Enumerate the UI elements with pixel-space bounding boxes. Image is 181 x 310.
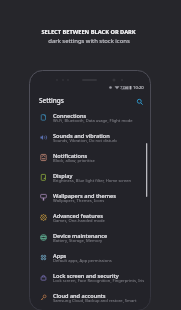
staticText: Device maintenance bbox=[53, 232, 108, 240]
staticText: dark settings with stock icons bbox=[48, 37, 130, 45]
staticText: Notifications bbox=[53, 152, 88, 160]
button[interactable]: Cloud and accounts bbox=[29, 288, 151, 308]
button[interactable]: Apps bbox=[29, 248, 151, 268]
button[interactable]: Notifications bbox=[29, 148, 151, 168]
staticText: Battery, Storage, Memory bbox=[53, 238, 103, 244]
staticText: Wi-Fi, Bluetooth, Data usage, Flight mod… bbox=[53, 118, 133, 124]
staticText: Cloud and accounts bbox=[53, 292, 106, 300]
button[interactable]: Display bbox=[29, 168, 151, 188]
button[interactable]: Wallpapers and themes bbox=[29, 188, 151, 208]
staticText: Sounds and vibration bbox=[53, 132, 110, 140]
staticText: Games, One-handed mode bbox=[53, 218, 105, 224]
staticText: Block, allow, prioritise bbox=[53, 158, 95, 164]
staticText: Lock screen and security bbox=[53, 272, 119, 280]
staticText: Lock screen, Face Recognition, Fingerpri… bbox=[53, 278, 145, 284]
staticText: Brightness, Blue light filter, Home scre… bbox=[53, 178, 132, 184]
staticText: Wallpapers, Themes, Icons bbox=[53, 198, 105, 204]
button[interactable]: Sounds and vibration bbox=[29, 128, 151, 148]
staticText: Settings bbox=[39, 96, 64, 105]
button[interactable]: Advanced features bbox=[29, 208, 151, 228]
staticText: 77% bbox=[120, 85, 128, 90]
staticText: 10:20 bbox=[133, 85, 144, 91]
staticText: Display bbox=[53, 172, 73, 180]
staticText: Apps bbox=[53, 252, 67, 260]
button[interactable]: Lock screen and security bbox=[29, 268, 151, 288]
staticText: Samsung Cloud, Backup and restore, Smart… bbox=[53, 298, 147, 304]
staticText: Sounds, Vibration, Do not disturb bbox=[53, 138, 117, 144]
button[interactable]: Search bbox=[134, 96, 146, 108]
staticText: SELECT BETWEEN BLACK OR DARK bbox=[41, 28, 136, 36]
button[interactable]: Connections bbox=[29, 108, 151, 128]
staticText: Default apps, App permissions bbox=[53, 258, 112, 264]
staticText: Connections bbox=[53, 112, 87, 120]
staticText: Advanced features bbox=[53, 212, 103, 220]
button[interactable]: Device maintenance bbox=[29, 228, 151, 248]
staticText: Wallpapers and themes bbox=[53, 192, 116, 200]
